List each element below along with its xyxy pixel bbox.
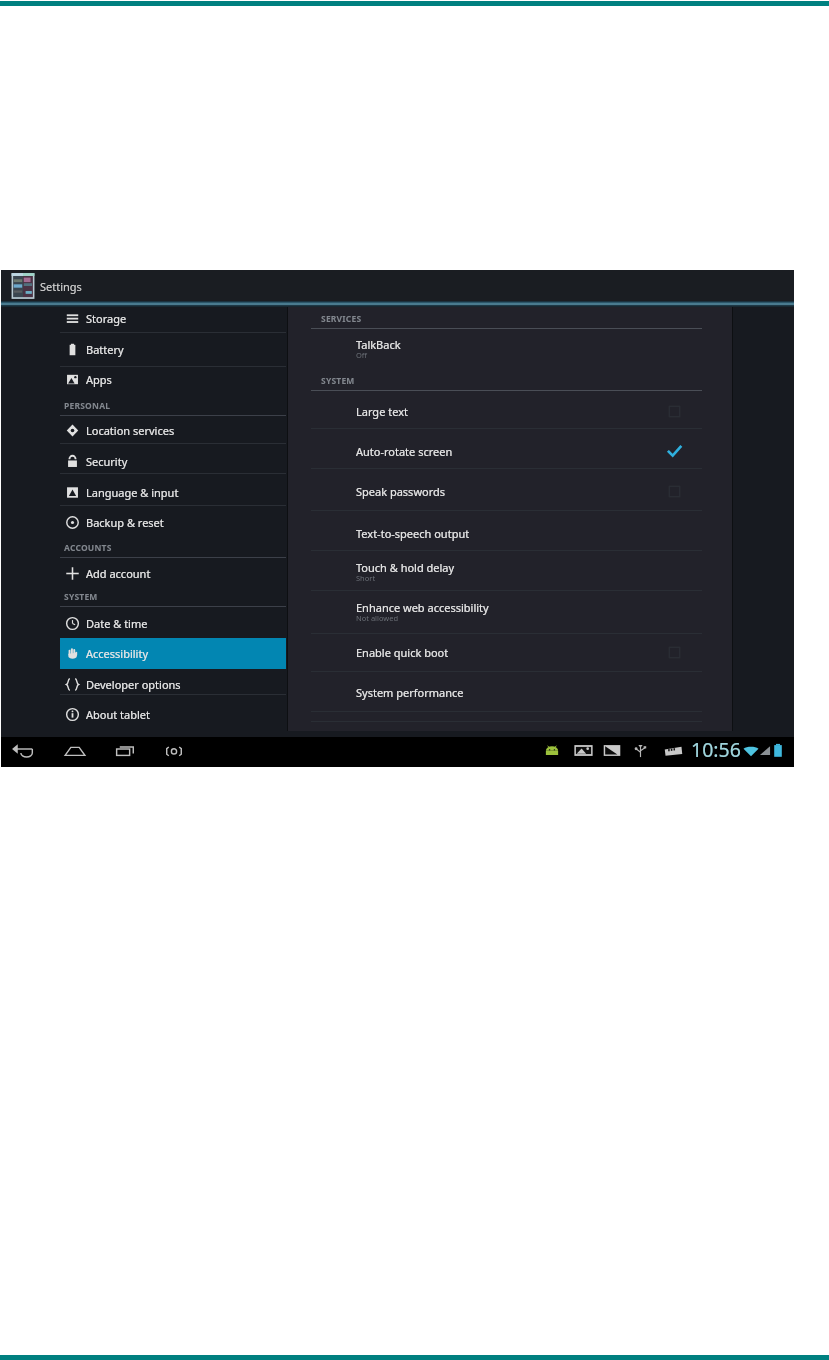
- button[interactable]: Add account: [60, 558, 286, 589]
- button[interactable]: Security: [60, 446, 286, 477]
- button[interactable]: [1, 270, 794, 301]
- button[interactable]: Touch & hold delay: [288, 552, 732, 590]
- staticText: Accessibility: [86, 646, 149, 661]
- staticText: PERSONAL: [64, 400, 111, 412]
- staticText: Enhance web accessibility: [356, 600, 489, 615]
- button[interactable]: Speak passwords: [288, 472, 732, 510]
- staticText: Touch & hold delay: [356, 560, 455, 575]
- staticText: System performance: [356, 685, 464, 700]
- staticText: Large text: [356, 404, 408, 419]
- staticText: Storage: [86, 311, 127, 326]
- staticText: Date & time: [86, 616, 148, 631]
- button[interactable]: Accessibility: [60, 638, 286, 669]
- staticText: Settings: [40, 279, 82, 294]
- button[interactable]: Battery: [60, 334, 286, 365]
- staticText: Enable quick boot: [356, 645, 449, 660]
- button[interactable]: System performance: [288, 673, 732, 711]
- button[interactable]: Home: [62, 741, 88, 761]
- staticText: Apps: [86, 372, 112, 387]
- staticText: Auto-rotate screen: [356, 444, 453, 459]
- staticText: TalkBack: [356, 337, 401, 352]
- staticText: About tablet: [86, 707, 150, 722]
- button[interactable]: Date & time: [60, 608, 286, 639]
- button[interactable]: TalkBack: [288, 329, 732, 367]
- button[interactable]: Auto-rotate screen: [288, 432, 732, 470]
- staticText: Location services: [86, 423, 175, 438]
- staticText: Off: [356, 350, 368, 360]
- staticText: Not allowed: [356, 613, 399, 623]
- staticText: SYSTEM: [64, 591, 98, 603]
- button[interactable]: Developer options: [60, 669, 286, 700]
- staticText: Add account: [86, 566, 151, 581]
- button[interactable]: Storage: [60, 303, 286, 334]
- staticText: 10:56: [691, 736, 741, 763]
- button[interactable]: Large text: [288, 392, 732, 430]
- staticText: Short: [356, 573, 376, 583]
- staticText: Backup & reset: [86, 515, 164, 530]
- button[interactable]: Location services: [60, 415, 286, 446]
- staticText: SERVICES: [321, 313, 362, 325]
- button[interactable]: Recent apps: [113, 741, 139, 761]
- staticText: Language & input: [86, 485, 179, 500]
- button[interactable]: Enable quick boot: [288, 633, 732, 671]
- button[interactable]: Screenshot: [161, 741, 187, 761]
- button[interactable]: Language & input: [60, 477, 286, 508]
- staticText: Battery: [86, 342, 124, 357]
- staticText: Text-to-speech output: [356, 526, 470, 541]
- staticText: Security: [86, 454, 128, 469]
- button[interactable]: Enhance web accessibility: [288, 592, 732, 630]
- staticText: Speak passwords: [356, 484, 446, 499]
- button[interactable]: Apps: [60, 364, 286, 395]
- staticText: Developer options: [86, 677, 181, 692]
- button[interactable]: About tablet: [60, 699, 286, 730]
- staticText: SYSTEM: [321, 375, 355, 387]
- button[interactable]: Text-to-speech output: [288, 514, 732, 552]
- staticText: ACCOUNTS: [64, 542, 112, 554]
- button[interactable]: Backup & reset: [60, 507, 286, 538]
- button[interactable]: Back: [11, 741, 37, 761]
